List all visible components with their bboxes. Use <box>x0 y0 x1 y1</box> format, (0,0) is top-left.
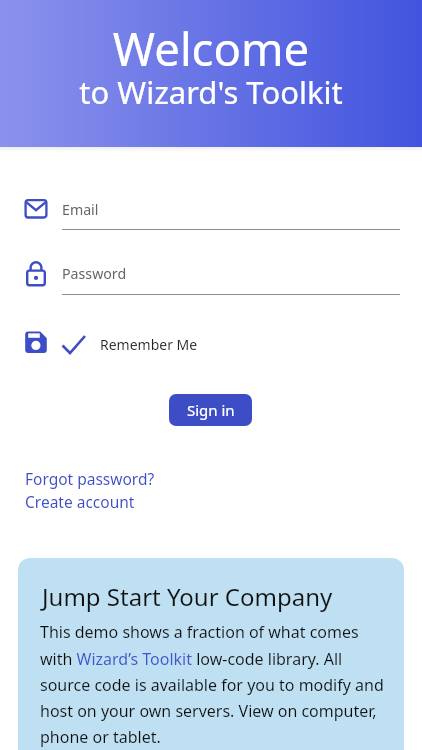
staticText: Welcome <box>0 17 422 79</box>
staticText: to Wizard's Toolkit <box>0 71 422 113</box>
button[interactable]: Forgot password? <box>25 468 155 489</box>
button[interactable]: Remember Me <box>100 335 198 354</box>
staticText: Email <box>62 200 99 219</box>
staticText: Create account <box>25 491 135 512</box>
staticText: Jump Start Your Company <box>42 580 333 613</box>
button[interactable]: Sign in <box>169 394 252 426</box>
staticText: This demo shows a fraction of what comes… <box>40 621 384 747</box>
staticText: Sign in <box>187 400 235 420</box>
staticText: Remember Me <box>100 335 198 354</box>
staticText: Forgot password? <box>25 468 155 489</box>
staticText: Password <box>62 264 127 283</box>
button[interactable]: Create account <box>25 491 135 512</box>
